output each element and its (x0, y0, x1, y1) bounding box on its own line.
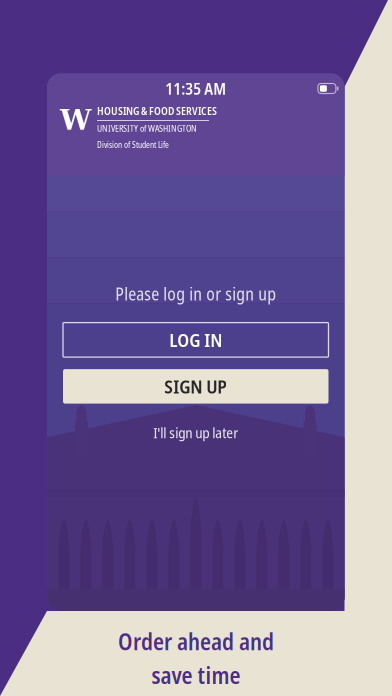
staticText: HOUSING & FOOD SERVICES (97, 103, 217, 118)
staticText: W (60, 103, 91, 136)
staticText: UNIVERSITY of WASHINGTON (97, 122, 197, 134)
staticText: Please log in or sign up (115, 282, 276, 306)
button[interactable]: SIGN UP (63, 369, 328, 404)
button[interactable]: LOG IN (63, 323, 328, 357)
staticText: I'll sign up later (153, 423, 238, 443)
staticText: 11:35 AM (165, 78, 226, 99)
staticText: SIGN UP (164, 374, 227, 399)
staticText: Order ahead and (118, 626, 274, 657)
staticText: LOG IN (169, 327, 222, 352)
button[interactable]: I'll sign up later (153, 423, 238, 443)
staticText: save time (151, 660, 240, 691)
staticText: Division of Student Life (97, 139, 169, 150)
